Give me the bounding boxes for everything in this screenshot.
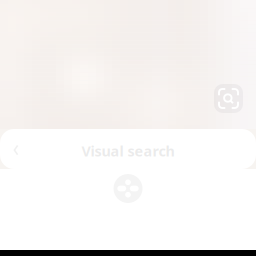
staticText: Visual search (81, 141, 174, 161)
button[interactable]: Visual search (214, 84, 243, 113)
